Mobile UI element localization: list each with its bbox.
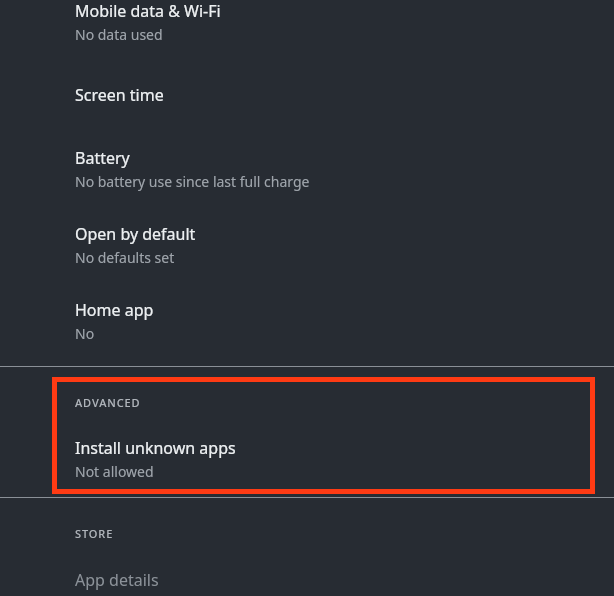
staticText: Home app <box>75 299 154 321</box>
staticText: No <box>75 324 95 343</box>
staticText: App details <box>75 569 159 591</box>
staticText: Screen time <box>75 84 164 106</box>
staticText: Battery <box>75 147 130 169</box>
button[interactable]: App details <box>0 569 614 596</box>
staticText: No data used <box>75 25 163 44</box>
staticText: Not allowed <box>75 462 154 481</box>
staticText: Mobile data & Wi-Fi <box>75 0 221 22</box>
staticText: STORE <box>75 526 114 541</box>
button[interactable]: Install unknown apps <box>0 437 614 481</box>
button[interactable]: Battery <box>0 147 614 191</box>
button[interactable]: Open by default <box>0 223 614 267</box>
staticText: No defaults set <box>75 248 175 267</box>
staticText: ADVANCED <box>75 395 141 410</box>
staticText: Open by default <box>75 223 196 245</box>
button[interactable]: Screen time <box>0 84 614 106</box>
button[interactable]: Home app <box>0 299 614 343</box>
button[interactable]: Mobile data & Wi-Fi <box>0 0 614 44</box>
staticText: Install unknown apps <box>75 437 236 459</box>
staticText: No battery use since last full charge <box>75 172 310 191</box>
